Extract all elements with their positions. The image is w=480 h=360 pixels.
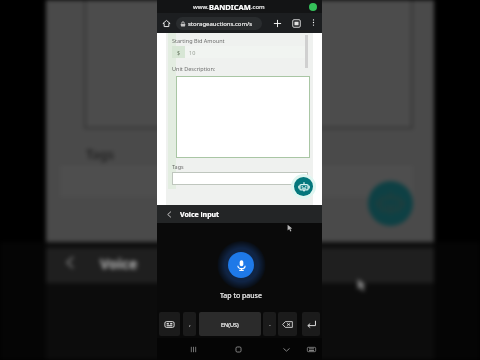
staticText: .com — [251, 3, 265, 11]
button[interactable]: EN(US) — [199, 312, 261, 336]
staticText: Voice — [100, 254, 138, 273]
button[interactable]: . — [263, 312, 276, 336]
staticText: Tags — [172, 163, 184, 170]
button[interactable]: , — [183, 312, 196, 336]
staticText: Unit Description: — [172, 65, 216, 72]
staticText: BANDICAM — [209, 2, 251, 12]
staticText: Starting Bid Amount — [172, 37, 225, 44]
button[interactable]: Microphone, tap to pause — [228, 252, 254, 278]
staticText: www. — [193, 3, 209, 11]
button[interactable]: More options — [307, 16, 320, 29]
button[interactable]: Switch keyboard — [159, 312, 180, 336]
button[interactable]: Hide keyboard — [305, 343, 318, 356]
button[interactable]: storageauctions.com/s — [176, 17, 262, 30]
staticText: storageauctions.com/s — [188, 20, 253, 28]
button[interactable]: Voice input — [157, 205, 322, 223]
button[interactable]: Home — [159, 16, 173, 30]
staticText: . — [269, 319, 271, 329]
button[interactable]: Tabs — [289, 16, 303, 30]
staticText: $ — [177, 49, 181, 56]
button[interactable]: Open chat assistant — [291, 174, 316, 199]
staticText: , — [189, 319, 191, 329]
button[interactable]: Recent apps — [187, 343, 200, 356]
button[interactable]: Enter — [302, 312, 320, 336]
button[interactable]: Backspace — [278, 312, 297, 336]
button[interactable]: New tab — [270, 16, 284, 30]
staticText: Tap to pause — [220, 291, 262, 301]
staticText: Voice input — [180, 210, 220, 220]
staticText: Tags — [86, 145, 115, 163]
button[interactable]: Home — [232, 343, 245, 356]
staticText: 10 — [189, 49, 196, 56]
button[interactable]: Back — [280, 343, 293, 356]
staticText: EN(US) — [221, 321, 239, 328]
